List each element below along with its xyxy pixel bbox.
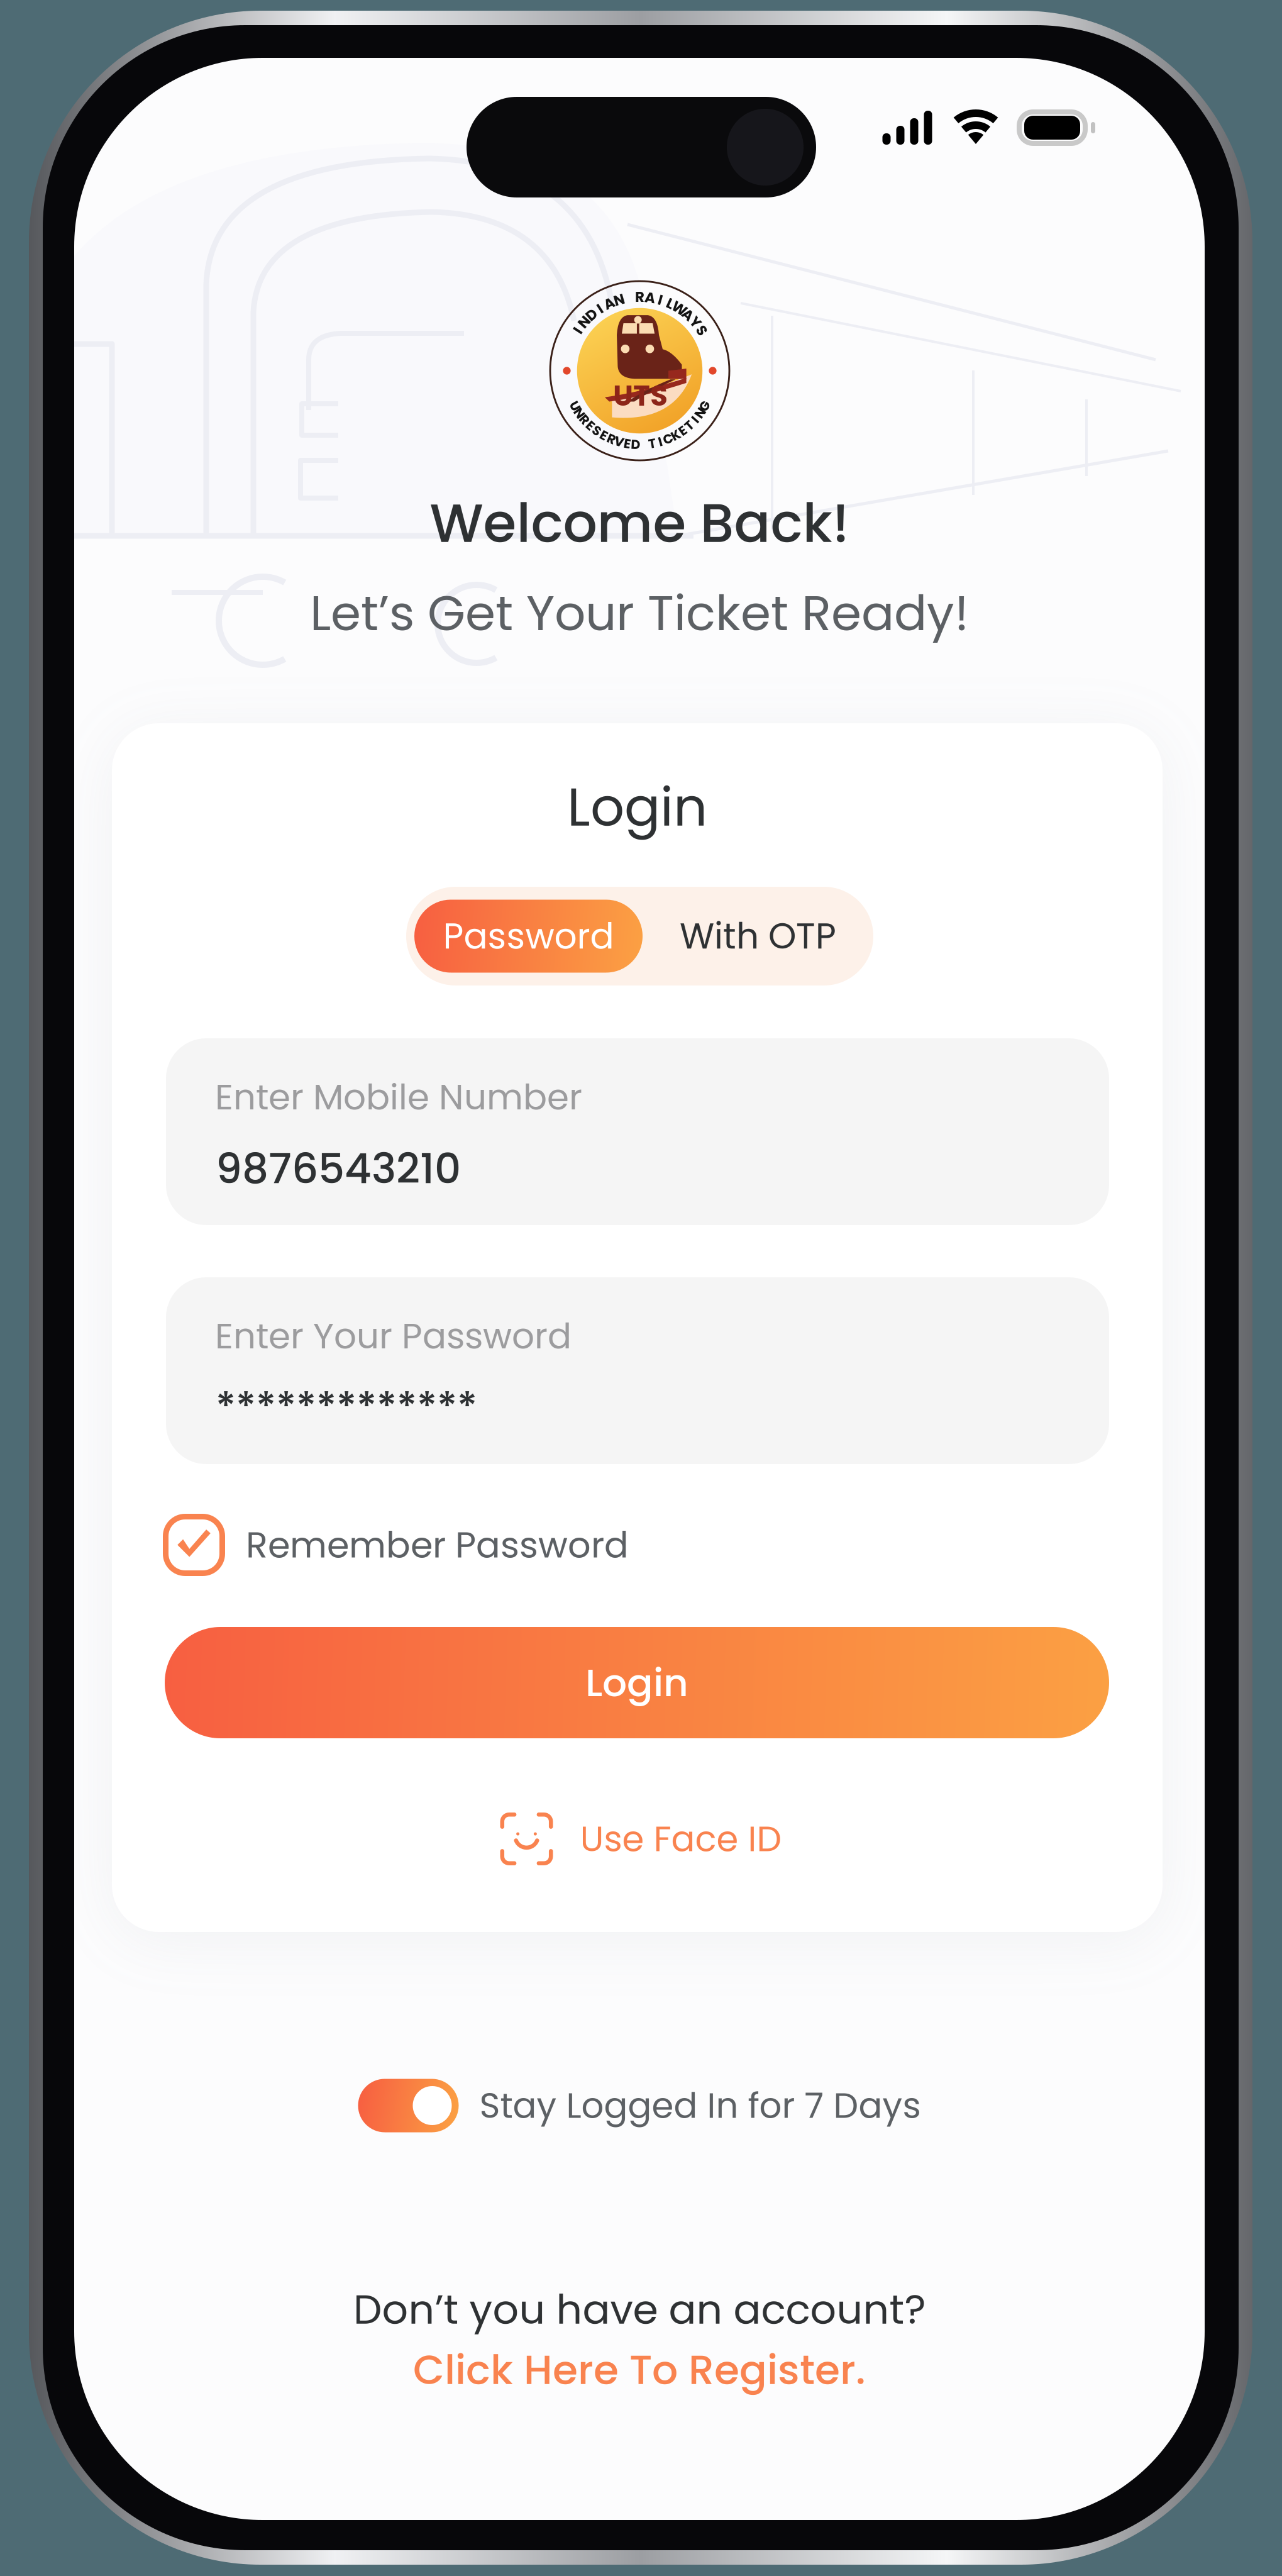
staticText: A [682, 305, 693, 325]
staticText: Y [691, 312, 700, 332]
staticText: A [604, 293, 615, 314]
staticText: N [579, 312, 590, 332]
staticText: Let’s Get Your Ticket Ready! [310, 579, 969, 647]
staticText: I [658, 433, 662, 451]
staticText: N [696, 404, 705, 422]
staticText: U [570, 397, 579, 415]
staticText: Login [567, 770, 707, 844]
staticText: With OTP [680, 911, 836, 961]
staticText: T [648, 435, 656, 453]
button[interactable]: Remember Password [163, 1514, 1106, 1576]
staticText: D [586, 305, 597, 325]
staticText: Enter Your Password [215, 1311, 572, 1361]
staticText: E [679, 422, 686, 440]
staticText: K [671, 426, 680, 444]
staticText: N [575, 404, 584, 422]
staticText: I [693, 411, 697, 429]
button[interactable]: Password [414, 900, 643, 973]
staticText: Click Here To Register. [413, 2341, 866, 2398]
staticText: W [672, 298, 687, 319]
staticText: S [593, 422, 601, 440]
staticText: E [587, 417, 594, 435]
button[interactable]: With OTP [643, 900, 873, 973]
staticText: Login [585, 1656, 688, 1710]
button[interactable]: Click Here To Register. [401, 2341, 878, 2398]
staticText: C [663, 430, 673, 448]
staticText: Remember Password [246, 1520, 629, 1570]
staticText: UTS [613, 376, 668, 416]
staticText: E [600, 426, 607, 444]
staticText: S [697, 320, 706, 340]
staticText: Enter Mobile Number [215, 1072, 582, 1122]
staticText: R [635, 287, 644, 307]
staticText: Don’t you have an account? [353, 2281, 926, 2338]
staticText: D [631, 435, 640, 454]
staticText: Use Face ID [580, 1814, 782, 1864]
button[interactable]: Login [165, 1627, 1109, 1738]
button[interactable]: Stay Logged In for 7 Days [358, 2068, 921, 2143]
staticText: N [614, 290, 624, 310]
staticText: I [598, 298, 602, 319]
staticText: I [658, 290, 663, 310]
staticText: G [700, 397, 710, 415]
staticText: ************* [216, 1379, 477, 1435]
staticText: R [580, 411, 589, 429]
staticText: L [667, 293, 674, 314]
staticText: T [685, 417, 693, 435]
staticText: Password [443, 911, 614, 961]
staticText: V [614, 433, 624, 451]
button[interactable]: Use Face ID [500, 1807, 782, 1870]
staticText: 9876543210 [216, 1140, 461, 1198]
staticText: I [576, 320, 580, 340]
staticText: Welcome Back! [430, 486, 849, 561]
staticText: R [607, 430, 615, 448]
staticText: A [645, 288, 656, 308]
staticText: Stay Logged In for 7 Days [479, 2081, 921, 2130]
staticText: E [624, 435, 631, 453]
